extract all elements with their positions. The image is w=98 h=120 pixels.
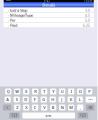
staticText: › [8,23,9,28]
staticText: B [52,105,55,110]
staticText: 123 [11,114,17,117]
staticText: space [45,114,52,117]
button[interactable]: C [32,104,38,110]
staticText: 5.0 [85,18,90,23]
staticText: M [69,105,73,110]
staticText: › [8,18,9,23]
staticText: C [34,105,37,110]
staticText: A [6,97,9,102]
staticText: K [70,97,72,102]
staticText: G [42,97,45,102]
staticText: Q [7,89,10,94]
button[interactable]: W [14,88,20,94]
button[interactable]: F [32,96,38,102]
button[interactable]: › [4,8,94,13]
staticText: Details [42,2,55,8]
button[interactable]: , [77,104,83,110]
staticText: E [25,89,27,94]
staticText: I [71,89,72,94]
staticText: V [43,105,45,110]
button[interactable]: › [4,18,94,23]
button[interactable]: A [5,96,11,102]
button[interactable]: 123 [78,112,88,118]
staticText: › [8,8,9,13]
button[interactable]: H [50,96,56,102]
button[interactable]: L [77,96,83,102]
button[interactable]: Z [14,104,20,110]
staticText: , [80,105,81,110]
staticText: 4.5 [85,13,90,18]
staticText: T [43,89,45,94]
staticText: 100% [84,0,92,3]
staticText: Mileage/Type [10,13,33,18]
button[interactable]: P [86,88,92,94]
staticText: return [88,99,93,100]
staticText: R [34,89,36,94]
button[interactable]: R [32,88,38,94]
staticText: › [8,13,9,18]
button[interactable]: › [4,13,94,18]
staticText: 3.0 [85,8,90,13]
button[interactable]: V [41,104,47,110]
staticText: Per [10,18,16,23]
staticText: ⌫ [88,106,92,109]
button[interactable]: S [14,96,20,102]
button[interactable]: E [23,88,29,94]
staticText: J [61,97,62,102]
button[interactable]: space [22,112,75,118]
button[interactable]: I [68,88,74,94]
staticText: U [61,89,64,94]
staticText: F [34,97,36,102]
staticText: X [25,105,27,110]
button[interactable]: G [41,96,47,102]
staticText: ••••• [6,0,11,3]
button[interactable]: B [50,104,56,110]
staticText: W [15,89,19,94]
button[interactable]: U [59,88,65,94]
button[interactable]: return [86,96,96,102]
button[interactable]: N [59,104,65,110]
staticText: D [24,97,27,102]
staticText: L [79,97,81,102]
button[interactable]: D [23,96,29,102]
button[interactable]: M [68,104,74,110]
button[interactable]: K [68,96,74,102]
button[interactable]: ⌫ [86,104,94,110]
staticText: O [79,89,82,94]
button[interactable]: Q [5,88,11,94]
staticText: Paid [10,23,17,28]
staticText: 123 [80,114,86,117]
staticText: H [51,97,54,102]
button[interactable]: X [23,104,29,110]
staticText: Extra Stop [10,8,27,13]
button[interactable]: › [4,23,94,28]
staticText: Y [52,89,54,94]
staticText: S [16,97,18,102]
button[interactable]: J [59,96,65,102]
staticText: Z [16,105,18,110]
button[interactable]: ⇧ [3,104,11,110]
button[interactable]: 123 [9,112,20,118]
button[interactable]: T [41,88,47,94]
staticText: N [61,105,64,110]
staticText: ⇧ [6,106,8,109]
staticText: 9:41 [44,0,51,3]
button[interactable]: O [77,88,83,94]
button[interactable]: Y [50,88,56,94]
staticText: 6.25 [83,23,90,28]
staticText: P [88,89,90,94]
